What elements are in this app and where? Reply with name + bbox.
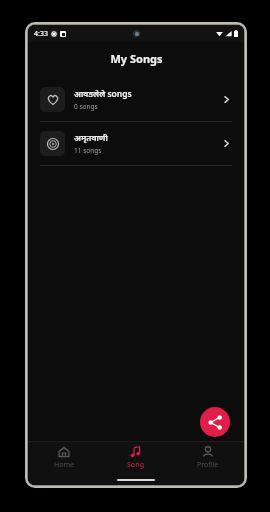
staticText: अमृतवाणी	[74, 132, 108, 144]
staticText: 0 songs	[74, 102, 98, 111]
staticText: Profile	[197, 460, 219, 470]
button[interactable]: आवडलेले songs	[28, 78, 244, 121]
button[interactable]: Share	[200, 407, 230, 437]
staticText: Song	[127, 460, 145, 470]
staticText: Home	[54, 460, 74, 470]
staticText: आवडलेले songs	[74, 88, 132, 100]
button[interactable]: Profile	[172, 442, 244, 474]
button[interactable]: Home	[28, 442, 100, 474]
staticText: 4:33	[34, 29, 48, 39]
staticText: My Songs	[110, 51, 163, 66]
staticText: 11 songs	[74, 146, 102, 155]
button[interactable]: अमृतवाणी	[28, 122, 244, 165]
button[interactable]: Song	[100, 442, 172, 474]
